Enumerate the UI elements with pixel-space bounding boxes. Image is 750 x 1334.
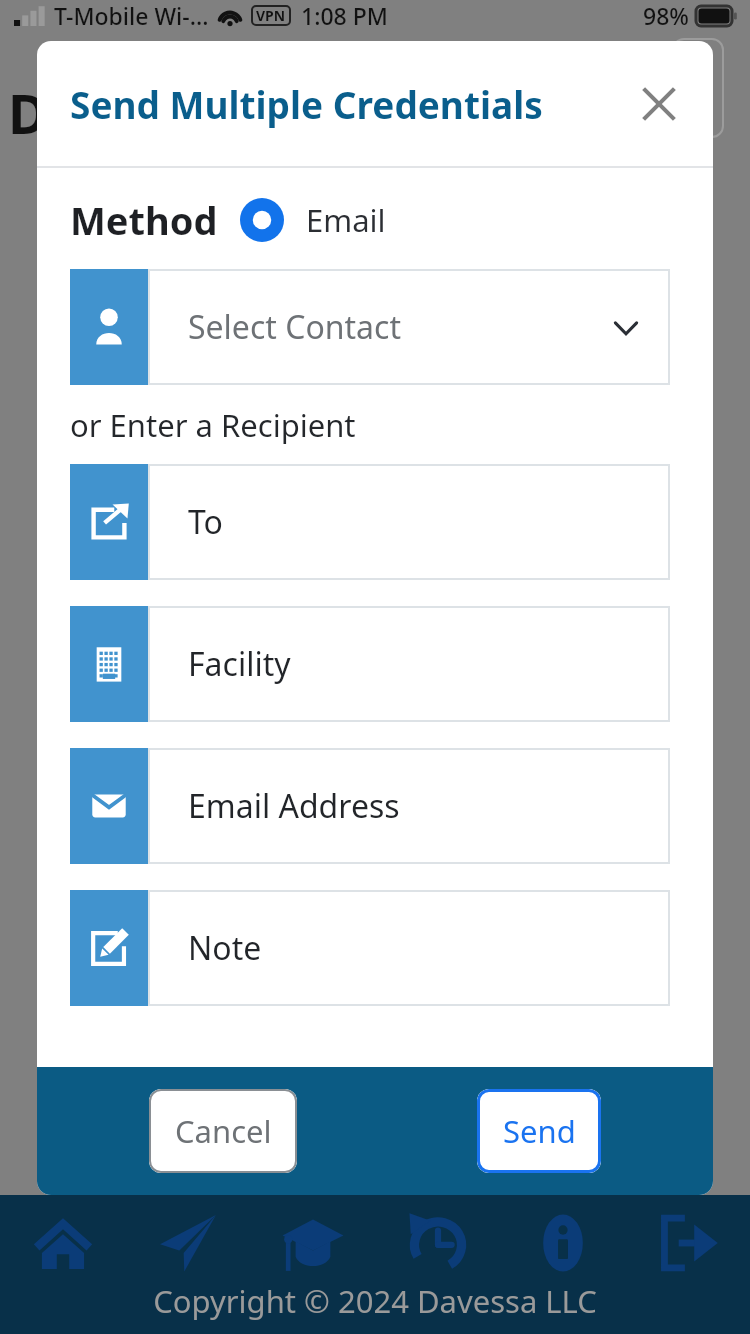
button[interactable]: Training bbox=[250, 1203, 375, 1283]
button[interactable]: Close bbox=[635, 80, 683, 128]
staticText: Email bbox=[306, 199, 386, 241]
staticText: Email Address bbox=[188, 784, 670, 828]
button[interactable]: Email Address bbox=[70, 748, 670, 864]
staticText: Facility bbox=[188, 642, 670, 686]
button[interactable]: Send bbox=[477, 1089, 601, 1173]
button[interactable]: Facility bbox=[70, 606, 670, 722]
button[interactable]: To bbox=[70, 464, 670, 580]
button[interactable]: Select Contact bbox=[70, 269, 670, 385]
button[interactable]: History bbox=[375, 1203, 500, 1283]
staticText: Send Multiple Credentials bbox=[70, 79, 543, 129]
staticText: D bbox=[8, 76, 48, 150]
staticText: T-Mobile Wi-... bbox=[54, 0, 209, 31]
staticText: Note bbox=[188, 926, 670, 970]
staticText: To bbox=[188, 500, 670, 544]
staticText: 98% bbox=[643, 0, 689, 31]
button[interactable]: Home bbox=[0, 1203, 125, 1283]
button[interactable]: Log out bbox=[625, 1203, 750, 1283]
button[interactable]: Note bbox=[70, 890, 670, 1006]
button[interactable]: Info bbox=[500, 1203, 625, 1283]
staticText: Method bbox=[70, 194, 218, 246]
staticText: VPN bbox=[256, 6, 286, 25]
button[interactable]: Cancel bbox=[149, 1089, 297, 1173]
button[interactable]: Send bbox=[125, 1203, 250, 1283]
staticText: Select Contact bbox=[188, 305, 612, 349]
staticText: Copyright © 2024 Davessa LLC bbox=[0, 1280, 750, 1322]
staticText: Send bbox=[503, 1110, 576, 1152]
staticText: Cancel bbox=[175, 1110, 272, 1152]
staticText: or Enter a Recipient bbox=[70, 404, 356, 446]
staticText: 1:08 PM bbox=[301, 0, 388, 31]
button[interactable]: Email bbox=[240, 198, 386, 242]
